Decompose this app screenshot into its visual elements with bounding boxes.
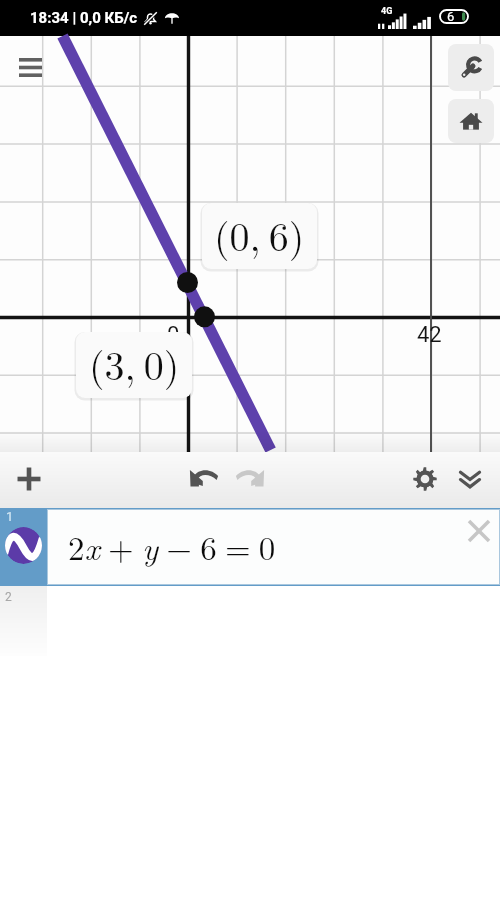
staticText: 6 [447,9,455,24]
staticText: 0 [167,322,180,348]
button[interactable]: Redo [228,455,272,499]
staticText: 18:34 | 0,0 КБ/с [30,9,138,27]
staticText: 4G [381,6,393,17]
staticText: 2x + y − 6 = 0 [68,523,276,570]
staticText: 1 [6,509,14,524]
button[interactable]: 1 [0,508,500,586]
staticText: (3, 0) [89,335,180,392]
staticText: 42 [417,322,442,348]
button[interactable]: Undo [182,455,226,499]
button[interactable]: Settings [448,44,494,91]
button[interactable]: Collapse keypad [448,458,492,502]
button[interactable]: Delete expression [460,512,498,550]
button[interactable]: Graph settings [403,457,447,501]
button[interactable]: 2 [0,586,500,656]
staticText: 2 [5,590,12,604]
button[interactable]: Menu [9,46,51,88]
button[interactable]: Home [448,99,494,143]
button[interactable]: Add expression [7,457,51,501]
staticText: (0, 6) [214,206,305,263]
